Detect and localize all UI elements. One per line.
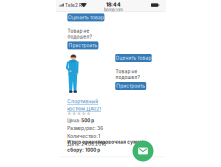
staticText: Итого ориентировочная сумма [67, 139, 144, 145]
staticText: fashop.com [103, 8, 123, 12]
staticText: сбору: 1000 р [67, 147, 100, 153]
button[interactable]: Оценить товар [115, 54, 152, 62]
staticText: Дата: 24.06.2018 [67, 141, 106, 147]
button[interactable]: Пристроить [67, 41, 98, 49]
staticText: Товар не подошел? [115, 69, 139, 80]
staticText: Товар не подошел? [68, 28, 92, 40]
staticText: Пристроить [116, 83, 145, 89]
staticText: Оценить товар [115, 55, 151, 61]
staticText: 500 р [81, 118, 94, 123]
button[interactable]: Открыть чат поддержки [132, 140, 153, 161]
staticText: костюм ДА021 [67, 106, 101, 112]
staticText: Tele2 RU [65, 2, 85, 8]
staticText: Размер/рвс: 36 [67, 126, 103, 131]
button[interactable]: Пристроить [115, 82, 146, 90]
staticText: Пристроить [68, 42, 97, 48]
staticText: Количество: 1 [67, 134, 100, 139]
staticText: Оценить товар [68, 14, 104, 20]
staticText: Спортивный [67, 99, 98, 104]
staticText: Цена: [67, 118, 81, 123]
button[interactable]: Оценить товар [67, 13, 104, 21]
staticText: 18:44 [106, 1, 121, 8]
